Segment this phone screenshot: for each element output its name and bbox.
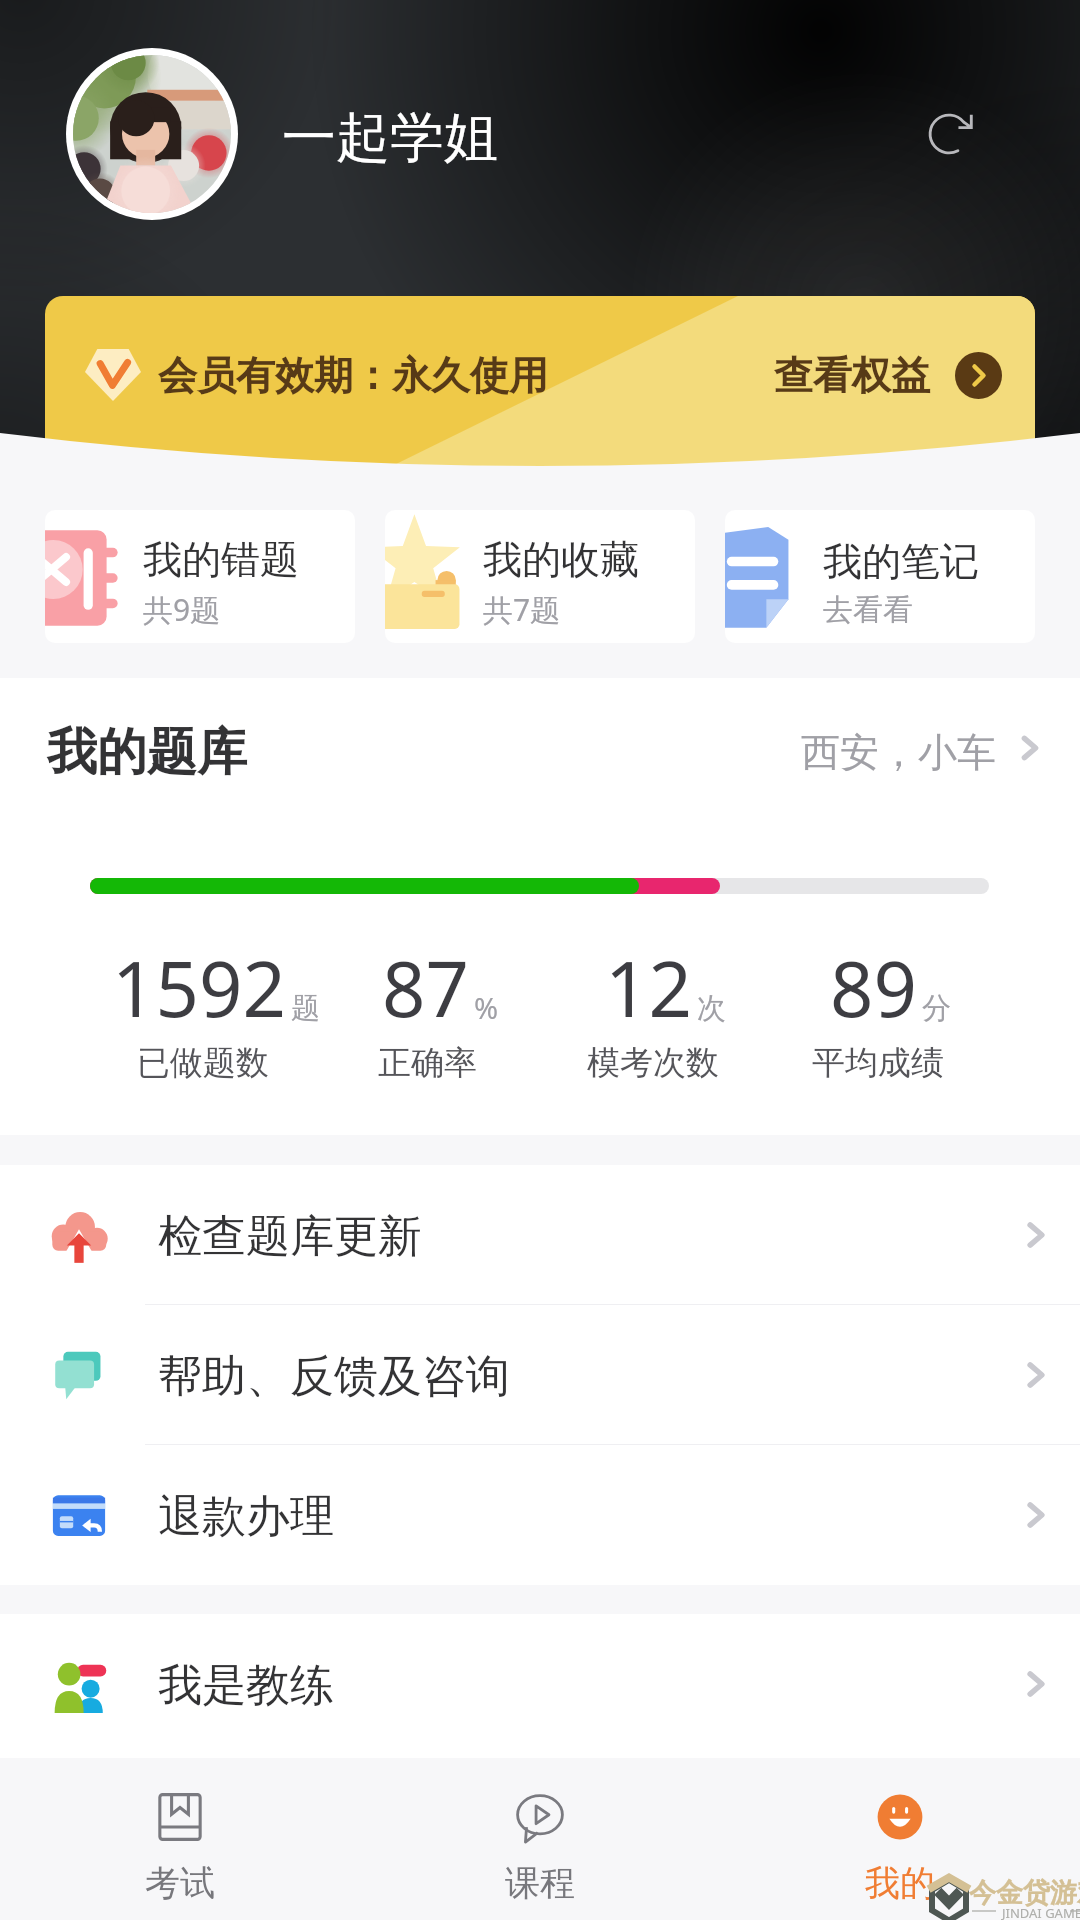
staticText: 今金贷游戏	[969, 1876, 1080, 1910]
staticText: 共7题	[483, 589, 561, 630]
staticText: 我的	[865, 1861, 935, 1905]
staticText: 我的笔记	[823, 537, 979, 586]
button[interactable]: 我的题库	[47, 678, 1050, 818]
button[interactable]	[66, 48, 238, 220]
staticText: 平均成绩	[812, 1042, 944, 1084]
button[interactable]: 会员有效期：永久使用	[45, 296, 1035, 476]
staticText: 我是教练	[158, 1658, 334, 1713]
staticText: 退款办理	[158, 1489, 334, 1544]
staticText: 考试	[145, 1861, 215, 1905]
staticText: 我的题库	[47, 721, 247, 784]
staticText: 一起学姐	[282, 104, 498, 172]
staticText: 已做题数	[137, 1042, 269, 1084]
staticText: 西安，小车	[801, 728, 996, 777]
staticText: 去看看	[823, 591, 913, 629]
staticText: 次	[697, 990, 726, 1027]
button[interactable]: 我的错题	[45, 510, 355, 643]
button[interactable]: 退款办理	[0, 1445, 1080, 1585]
staticText: 题	[291, 990, 320, 1027]
staticText: 帮助、反馈及咨询	[158, 1349, 510, 1404]
button[interactable]: 课程	[360, 1758, 720, 1920]
staticText: 查看权益	[774, 351, 930, 400]
staticText: 检查题库更新	[158, 1209, 422, 1264]
button[interactable]: 我的笔记	[725, 510, 1035, 643]
button[interactable]: 检查题库更新	[0, 1165, 1080, 1305]
button[interactable]: 我是教练	[0, 1614, 1080, 1754]
staticText: 1592	[112, 936, 286, 1040]
staticText: JINDAI GAME	[1002, 1904, 1080, 1920]
button[interactable]: 我的	[720, 1758, 1080, 1920]
staticText: 我的错题	[143, 535, 299, 584]
staticText: 正确率	[378, 1042, 477, 1084]
button[interactable]: Refresh	[919, 104, 979, 164]
button[interactable]: 我的收藏	[385, 510, 695, 643]
staticText: 87	[382, 936, 469, 1040]
staticText: 共9题	[143, 589, 221, 630]
staticText: 课程	[505, 1861, 575, 1905]
staticText: 模考次数	[587, 1042, 719, 1084]
button[interactable]: 考试	[0, 1758, 360, 1920]
staticText: 会员有效期：永久使用	[158, 351, 548, 400]
button[interactable]: 帮助、反馈及咨询	[0, 1305, 1080, 1445]
staticText: 12	[605, 936, 692, 1040]
staticText: 89	[830, 936, 917, 1040]
staticText: 我的收藏	[483, 535, 639, 584]
staticText: 分	[922, 990, 951, 1027]
staticText: %	[474, 988, 499, 1027]
